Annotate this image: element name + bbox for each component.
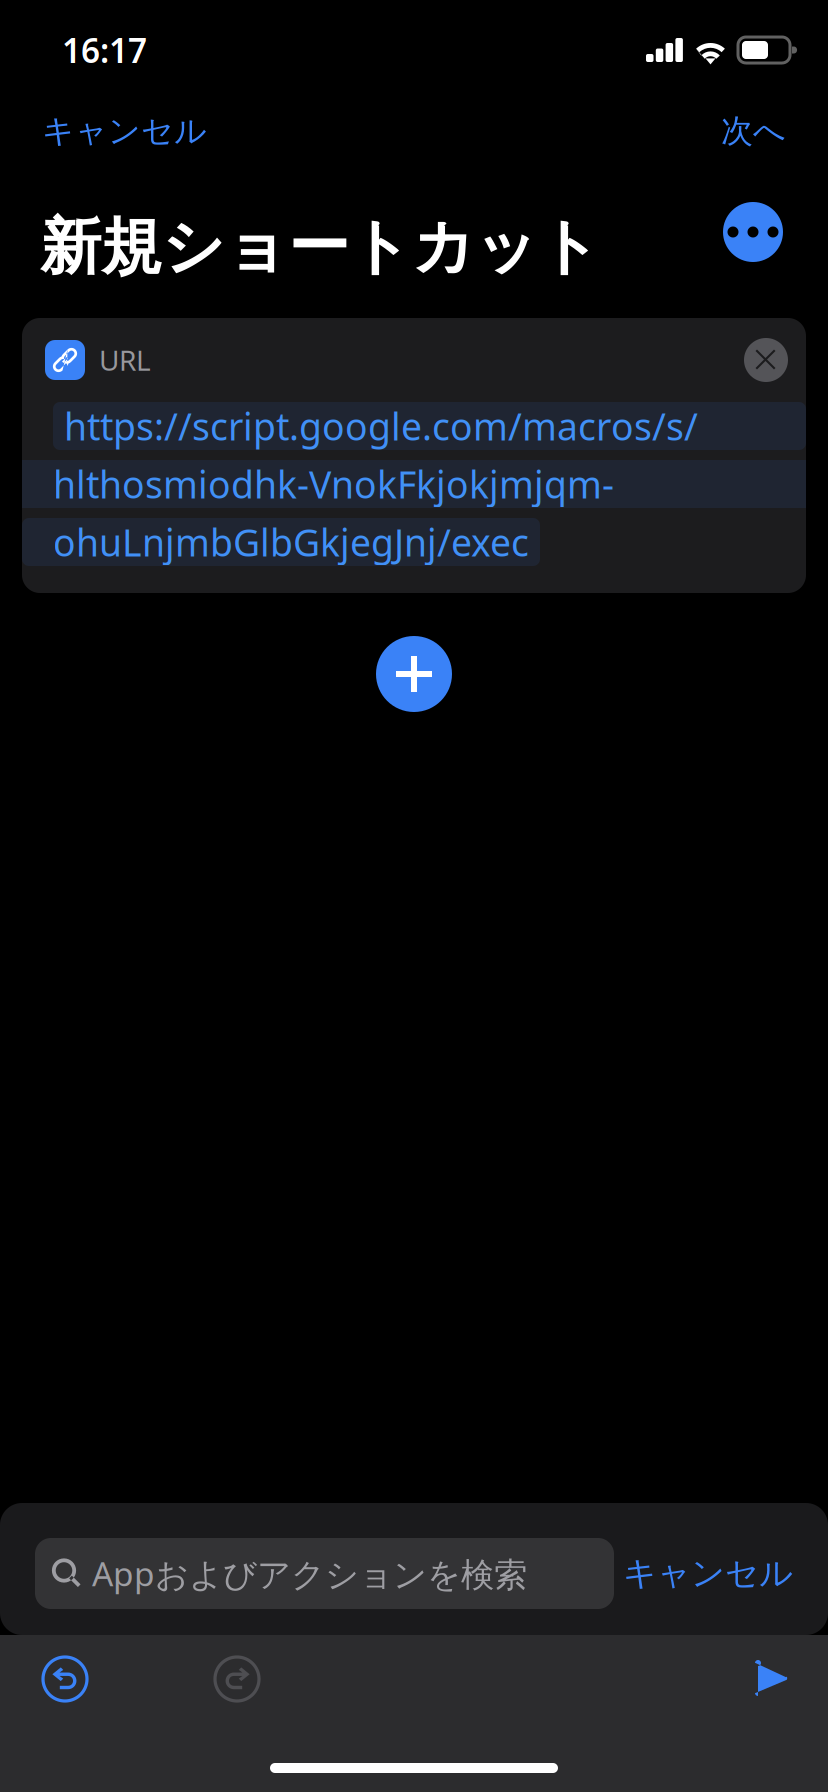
- staticText: URL: [99, 341, 151, 379]
- button[interactable]: 取り消す: [42, 1656, 88, 1702]
- button[interactable]: キャンセル: [623, 1538, 793, 1609]
- button[interactable]: キャンセル: [42, 101, 207, 161]
- staticText: Appおよびアクションを検索: [92, 1551, 527, 1596]
- staticText: https://script.google.com/macros/s/: [64, 401, 698, 451]
- button[interactable]: 再生: [754, 1660, 788, 1698]
- button[interactable]: 次へ: [721, 101, 786, 161]
- staticText: 16:17: [62, 28, 147, 72]
- staticText: 新規ショートカット: [40, 209, 601, 285]
- staticText: キャンセル: [623, 1553, 793, 1594]
- button[interactable]: その他: [723, 202, 783, 262]
- button[interactable]: やり直す: [214, 1656, 260, 1702]
- staticText: hlthosmiodhk-VnokFkjokjmjqm-: [53, 459, 614, 509]
- button[interactable]: 削除: [744, 338, 788, 382]
- staticText: 次へ: [721, 111, 786, 151]
- staticText: ohuLnjmbGlbGkjegJnj/exec: [53, 517, 529, 567]
- staticText: キャンセル: [42, 111, 207, 151]
- button[interactable]: アクションを追加: [376, 636, 452, 712]
